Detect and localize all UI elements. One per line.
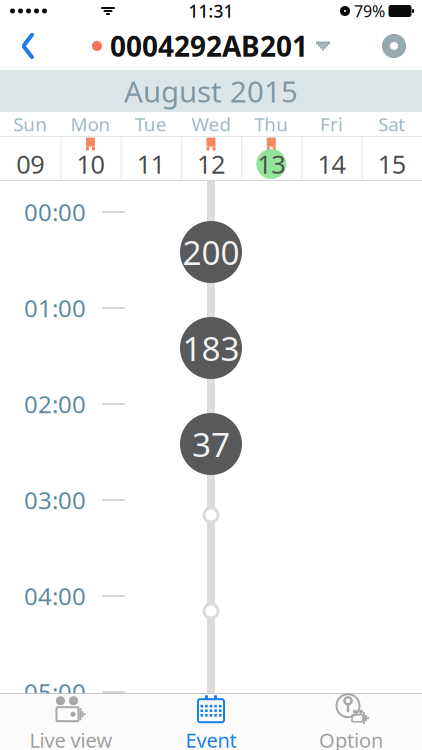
staticText: 14	[318, 147, 346, 181]
staticText: Live view	[29, 727, 112, 750]
staticText: Sat	[378, 112, 405, 136]
staticText: 11:31	[188, 0, 233, 22]
staticText: 0004292AB201	[110, 27, 308, 65]
staticText: 09	[16, 147, 44, 181]
button[interactable]: 13	[241, 137, 301, 180]
staticText: 02:00	[24, 388, 86, 420]
staticText: 13	[257, 147, 285, 181]
button[interactable]: 183	[180, 317, 242, 379]
button[interactable]: 12	[181, 137, 241, 180]
button[interactable]: Live view	[1, 694, 141, 750]
button[interactable]: 10	[60, 137, 121, 180]
staticText: 05:00	[24, 676, 86, 708]
staticText: 183	[182, 326, 239, 370]
staticText: 04:00	[24, 580, 86, 612]
staticText: 01:00	[24, 292, 86, 324]
staticText: 12	[197, 147, 225, 181]
button[interactable]: Option	[281, 694, 421, 750]
button[interactable]: 0004292AB201	[84, 21, 338, 71]
staticText: Event	[185, 727, 236, 750]
button[interactable]: 09	[0, 137, 60, 180]
button[interactable]: 11	[121, 137, 181, 180]
staticText: 10	[76, 147, 104, 181]
button[interactable]: 14	[301, 137, 362, 180]
button[interactable]: 37	[180, 413, 242, 475]
staticText: 03:00	[24, 484, 86, 516]
button[interactable]: Settings	[372, 24, 416, 68]
button[interactable]: Event	[141, 694, 281, 750]
staticText: 15	[378, 147, 406, 181]
staticText: Tue	[135, 112, 167, 136]
staticText: 200	[182, 230, 239, 274]
button[interactable]: 15	[362, 137, 422, 180]
staticText: Wed	[191, 112, 230, 136]
staticText: Option	[319, 727, 383, 750]
staticText: 00:00	[24, 196, 86, 228]
button[interactable]: Back	[6, 24, 50, 68]
staticText: Fri	[320, 112, 343, 136]
staticText: 37	[192, 422, 230, 466]
staticText: 79%	[354, 0, 385, 22]
staticText: 11	[137, 147, 165, 181]
staticText: Sun	[13, 112, 47, 136]
staticText: Mon	[70, 112, 110, 136]
staticText: August 2015	[124, 71, 298, 110]
staticText: Thu	[254, 112, 288, 136]
button[interactable]: 200	[180, 221, 242, 283]
